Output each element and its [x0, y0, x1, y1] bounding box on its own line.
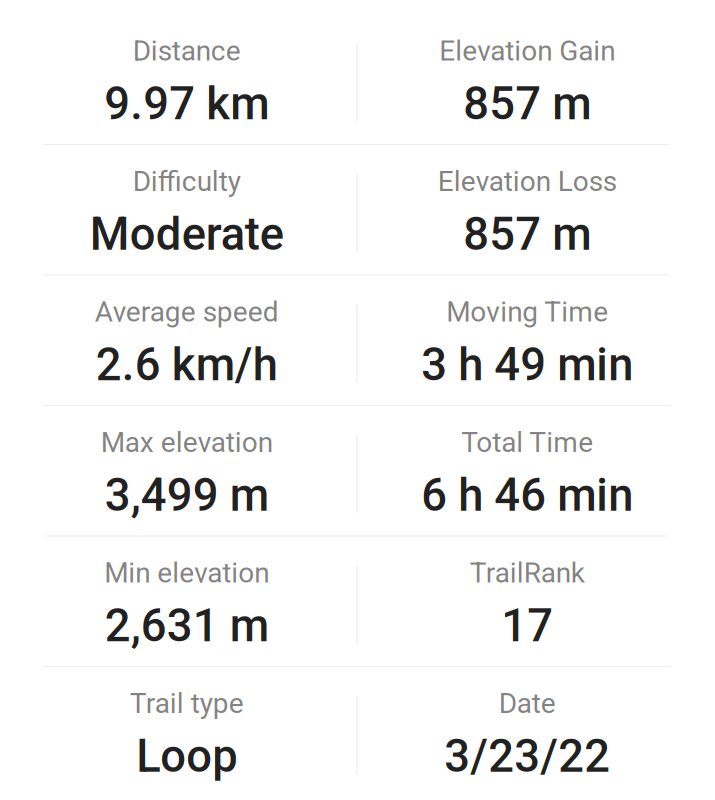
staticText: Loop	[136, 730, 237, 783]
staticText: 3,499 m	[105, 469, 269, 522]
staticText: Distance	[133, 34, 241, 67]
staticText: Elevation Gain	[439, 34, 615, 67]
staticText: Date	[499, 687, 556, 720]
staticText: 857 m	[463, 77, 591, 130]
staticText: 17	[501, 599, 553, 652]
staticText: 857 m	[463, 208, 591, 261]
staticText: Difficulty	[133, 165, 241, 198]
staticText: 9.97 km	[104, 77, 269, 130]
staticText: Moving Time	[446, 295, 608, 328]
staticText: Max elevation	[101, 426, 273, 459]
staticText: Min elevation	[104, 556, 269, 589]
staticText: TrailRank	[470, 556, 585, 589]
staticText: Total Time	[461, 426, 593, 459]
staticText: Trail type	[130, 687, 244, 720]
staticText: Moderate	[90, 208, 284, 261]
staticText: 3/23/22	[444, 730, 610, 783]
staticText: 2,631 m	[105, 599, 269, 652]
staticText: 3 h 49 min	[421, 338, 633, 391]
staticText: Average speed	[95, 295, 279, 328]
staticText: 2.6 km/h	[96, 338, 278, 391]
staticText: 6 h 46 min	[421, 469, 633, 522]
staticText: Elevation Loss	[438, 165, 617, 198]
